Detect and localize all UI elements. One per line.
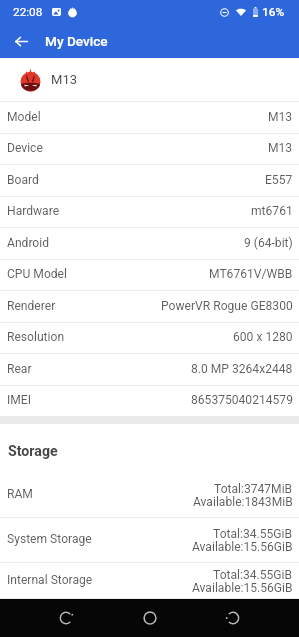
button[interactable]: IMEI <box>0 385 299 416</box>
staticText: E557 <box>265 173 293 187</box>
staticText: 9 (64-bit) <box>244 236 293 250</box>
staticText: Storage <box>8 443 58 460</box>
button[interactable]: System Storage <box>0 518 299 563</box>
staticText: 22:08 <box>13 5 43 19</box>
staticText: Resolution <box>7 330 65 344</box>
staticText: Available:15.56GiB <box>192 540 293 554</box>
button[interactable]: RAM <box>0 473 299 518</box>
staticText: Total:34.55GiB <box>213 568 293 582</box>
button[interactable]: Renderer <box>0 290 299 322</box>
button[interactable]: Rear <box>0 353 299 385</box>
staticText: M13 <box>51 72 78 87</box>
button[interactable]: Hardware <box>0 196 299 227</box>
staticText: My Device <box>45 33 108 49</box>
staticText: Available:15.56GiB <box>192 581 293 595</box>
staticText: Total:34.55GiB <box>213 527 293 541</box>
staticText: Device <box>7 141 43 155</box>
staticText: mt6761 <box>251 204 293 218</box>
staticText: 16% <box>262 5 285 19</box>
staticText: MT6761V/WBB <box>209 267 293 281</box>
button[interactable]: Device <box>0 133 299 164</box>
button[interactable]: Back <box>46 599 86 637</box>
staticText: IMEI <box>7 393 32 407</box>
button[interactable]: Back <box>7 27 35 55</box>
staticText: Board <box>7 173 39 187</box>
staticText: Available:1843MiB <box>193 495 293 509</box>
button[interactable]: Recent apps <box>213 599 253 637</box>
staticText: Model <box>7 110 41 124</box>
staticText: Android <box>7 236 50 250</box>
staticText: M13 <box>268 110 293 124</box>
staticText: Internal Storage <box>7 573 93 587</box>
button[interactable]: Android <box>0 227 299 259</box>
staticText: CPU Model <box>7 267 67 281</box>
button[interactable]: Internal Storage <box>0 563 299 599</box>
staticText: 865375040214579 <box>191 393 293 407</box>
staticText: PowerVR Rogue GE8300 <box>161 299 293 313</box>
staticText: Hardware <box>7 204 60 218</box>
staticText: Total:3747MiB <box>214 482 293 496</box>
staticText: 8.0 MP 3264x2448 <box>191 362 293 376</box>
staticText: Renderer <box>7 299 56 313</box>
button[interactable]: Home <box>130 599 170 637</box>
staticText: System Storage <box>7 532 92 546</box>
button[interactable]: Model <box>0 101 299 133</box>
staticText: RAM <box>7 487 33 501</box>
button[interactable]: CPU Model <box>0 259 299 290</box>
staticText: M13 <box>268 141 293 155</box>
button[interactable]: Resolution <box>0 322 299 353</box>
staticText: Rear <box>7 362 32 376</box>
button[interactable]: Board <box>0 164 299 196</box>
staticText: 600 x 1280 <box>233 330 293 344</box>
